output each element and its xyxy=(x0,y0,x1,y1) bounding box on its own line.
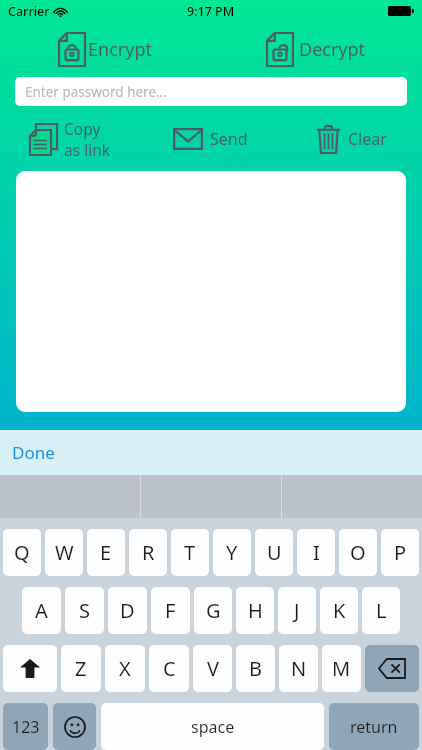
button[interactable]: Z xyxy=(61,645,101,692)
button[interactable]: G xyxy=(194,587,232,634)
button[interactable]: T xyxy=(171,529,209,576)
staticText: L xyxy=(376,597,387,624)
staticText: R xyxy=(142,539,155,566)
staticText: O xyxy=(350,539,366,566)
button[interactable]: P xyxy=(381,529,419,576)
staticText: W xyxy=(55,539,74,566)
staticText: J xyxy=(294,597,300,624)
button[interactable]: Enter password here... xyxy=(15,77,407,106)
button[interactable]: A xyxy=(22,587,61,634)
button[interactable]: Emoji xyxy=(53,703,96,750)
button[interactable]: S xyxy=(65,587,104,634)
staticText: M xyxy=(332,655,351,682)
button[interactable]: B xyxy=(236,645,275,692)
staticText: Carrier xyxy=(8,3,50,20)
staticText: S xyxy=(79,597,90,624)
staticText: Decrypt xyxy=(299,37,366,62)
staticText: Encrypt xyxy=(88,37,152,62)
button[interactable]: Q xyxy=(3,529,41,576)
staticText: C xyxy=(163,655,176,682)
button[interactable]: Done xyxy=(6,435,61,470)
button[interactable]: Shift xyxy=(3,645,57,692)
staticText: 123 xyxy=(12,716,40,738)
button[interactable]: Encrypt xyxy=(53,29,158,70)
staticText: Done xyxy=(12,441,55,464)
staticText: space xyxy=(191,716,235,738)
staticText: return xyxy=(350,716,398,738)
button[interactable]: M xyxy=(322,645,361,692)
staticText: P xyxy=(394,539,407,566)
button[interactable]: J xyxy=(278,587,316,634)
staticText: K xyxy=(333,597,346,624)
staticText: T xyxy=(184,539,196,566)
staticText: H xyxy=(248,597,263,624)
staticText: 9:17 PM xyxy=(187,3,235,20)
staticText: Copy xyxy=(64,118,101,139)
button[interactable]: return xyxy=(329,703,419,750)
button[interactable]: D xyxy=(108,587,147,634)
button[interactable]: N xyxy=(279,645,318,692)
button[interactable]: O xyxy=(339,529,377,576)
button[interactable]: R xyxy=(129,529,167,576)
button[interactable] xyxy=(16,171,406,412)
button[interactable]: Copy xyxy=(26,118,115,160)
button[interactable]: Decrypt xyxy=(261,29,372,70)
staticText: Z xyxy=(75,655,87,682)
button[interactable]: H xyxy=(236,587,274,634)
staticText: Send xyxy=(210,128,248,150)
button[interactable]: Y xyxy=(213,529,251,576)
staticText: G xyxy=(206,597,221,624)
button[interactable]: W xyxy=(45,529,83,576)
button[interactable]: K xyxy=(320,587,358,634)
button[interactable]: Clear xyxy=(313,125,391,153)
staticText: N xyxy=(291,655,307,682)
button[interactable]: U xyxy=(255,529,293,576)
button[interactable]: I xyxy=(297,529,335,576)
button[interactable]: space xyxy=(101,703,324,750)
staticText: D xyxy=(120,597,135,624)
button[interactable]: C xyxy=(149,645,189,692)
staticText: I xyxy=(313,539,320,566)
button[interactable]: Backspace xyxy=(365,645,419,692)
staticText: V xyxy=(207,655,219,682)
staticText: E xyxy=(100,539,112,566)
button[interactable]: L xyxy=(362,587,400,634)
staticText: X xyxy=(119,655,131,682)
button[interactable]: X xyxy=(105,645,145,692)
staticText: Clear xyxy=(348,128,387,150)
staticText: B xyxy=(249,655,262,682)
button[interactable]: V xyxy=(193,645,232,692)
staticText: F xyxy=(165,597,176,624)
staticText: U xyxy=(267,539,282,566)
button[interactable]: Send xyxy=(169,128,252,150)
staticText: Enter password here... xyxy=(25,83,167,101)
staticText: Y xyxy=(226,539,238,566)
staticText: as link xyxy=(64,139,111,160)
button[interactable]: E xyxy=(87,529,125,576)
button[interactable]: F xyxy=(151,587,190,634)
staticText: A xyxy=(35,597,48,624)
button[interactable]: 123 xyxy=(3,703,48,750)
staticText: Q xyxy=(14,539,30,566)
